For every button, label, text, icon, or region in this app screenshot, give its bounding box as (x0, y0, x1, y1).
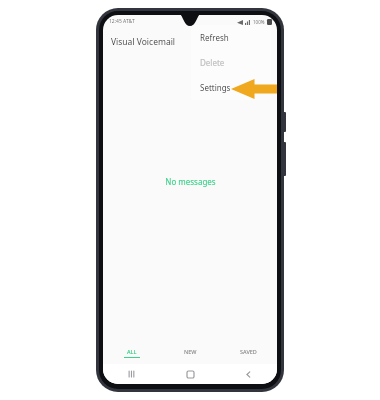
staticText: 100% (253, 19, 265, 25)
button[interactable]: Delete (191, 50, 271, 75)
button[interactable]: Back (219, 364, 277, 384)
staticText: Delete (200, 57, 225, 68)
staticText: NEW (184, 348, 197, 355)
button[interactable]: Home (161, 364, 219, 384)
staticText: 12:45 AT&T (109, 18, 135, 25)
button[interactable]: ALL (103, 342, 161, 364)
staticText: Refresh (200, 32, 229, 43)
button[interactable]: Settings (191, 75, 271, 100)
button[interactable]: Recent apps (103, 364, 161, 384)
staticText: SAVED (240, 348, 257, 355)
staticText: ALL (127, 348, 137, 355)
staticText: Visual Voicemail (111, 36, 176, 48)
button[interactable]: NEW (161, 342, 219, 364)
button[interactable]: SAVED (219, 342, 277, 364)
staticText: No messages (165, 176, 216, 187)
button[interactable]: Refresh (191, 25, 271, 50)
staticText: Settings (200, 82, 231, 93)
